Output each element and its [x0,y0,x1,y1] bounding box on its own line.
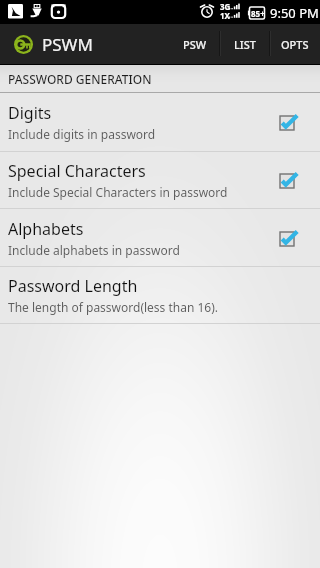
button[interactable]: LIST [220,24,270,64]
button[interactable]: Alphabets [0,209,320,266]
staticText: PSW [183,37,207,52]
button[interactable]: Special Characters [0,152,320,208]
button[interactable]: Special Characters checkbox, checked [280,169,302,191]
staticText: The length of password(less than 16). [8,299,219,315]
staticText: 9:50 PM [270,4,319,22]
staticText: Password Length [8,275,138,297]
button[interactable]: PSWM [0,24,320,64]
staticText: 3G [220,1,231,12]
staticText: Include digits in password [8,126,156,142]
staticText: OPTS [281,37,309,52]
staticText: PSWM [42,33,93,56]
staticText: 1X [220,10,230,21]
button[interactable]: Digits [0,93,320,151]
button[interactable]: OPTS [270,24,320,64]
button[interactable]: Alphabets checkbox, checked [280,227,302,249]
staticText: LIST [234,37,256,52]
button[interactable]: PSW [170,24,220,64]
staticText: Include Special Characters in password [8,184,228,200]
staticText: PASSWORD GENERATION [8,71,152,87]
staticText: Include alphabets in password [8,242,180,258]
button[interactable]: Password Length [0,267,320,323]
staticText: Special Characters [8,160,146,182]
staticText: 85+ [251,8,265,19]
staticText: Digits [8,102,52,124]
staticText: Alphabets [8,218,84,240]
button[interactable]: Digits checkbox, checked [280,111,302,133]
